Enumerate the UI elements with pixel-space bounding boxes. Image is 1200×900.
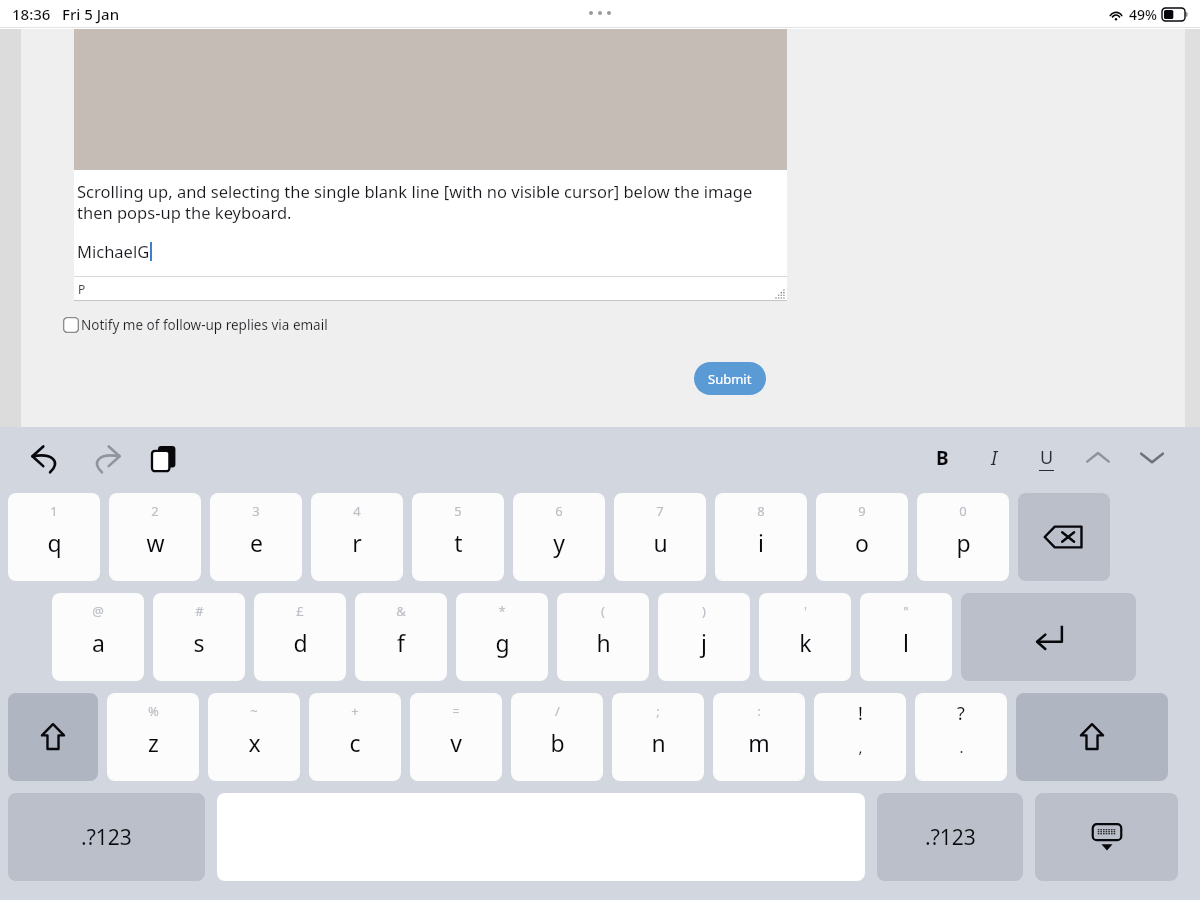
- button[interactable]: Redo: [86, 438, 126, 478]
- staticText: .?123: [925, 823, 976, 852]
- staticText: 18:36: [12, 4, 51, 24]
- button[interactable]: Hide keyboard: [1035, 793, 1178, 881]
- button[interactable]: Undo: [26, 438, 66, 478]
- button[interactable]: /: [511, 693, 603, 781]
- staticText: t: [454, 527, 463, 558]
- staticText: Submit: [708, 370, 752, 388]
- staticText: 5: [454, 502, 462, 520]
- button[interactable]: =: [410, 693, 502, 781]
- button[interactable]: 6: [513, 493, 605, 581]
- staticText: w: [146, 527, 165, 558]
- button[interactable]: I: [975, 439, 1013, 477]
- staticText: x: [248, 727, 261, 758]
- staticText: h: [596, 627, 611, 658]
- button[interactable]: !: [814, 693, 906, 781]
- staticText: £: [296, 602, 304, 620]
- staticText: n: [651, 727, 666, 758]
- staticText: p: [956, 527, 971, 558]
- staticText: .?123: [81, 823, 132, 852]
- staticText: k: [799, 627, 812, 658]
- button[interactable]: Submit: [694, 362, 766, 395]
- staticText: ': [804, 602, 807, 620]
- button[interactable]: *: [456, 593, 548, 681]
- button[interactable]: ): [658, 593, 750, 681]
- staticText: %: [148, 702, 159, 720]
- button[interactable]: £: [254, 593, 346, 681]
- staticText: @: [92, 602, 104, 620]
- staticText: *: [498, 602, 506, 620]
- button[interactable]: @: [52, 593, 144, 681]
- staticText: &: [396, 602, 406, 620]
- button[interactable]: ?: [915, 693, 1007, 781]
- staticText: P: [78, 281, 86, 297]
- button[interactable]: 2: [109, 493, 201, 581]
- staticText: Notify me of follow-up replies via email: [81, 316, 328, 334]
- button[interactable]: Backspace: [1018, 493, 1110, 581]
- staticText: b: [550, 727, 565, 758]
- staticText: Scrolling up, and selecting the single b…: [77, 180, 781, 224]
- staticText: (: [601, 602, 605, 620]
- button[interactable]: ': [759, 593, 851, 681]
- staticText: 1: [50, 502, 58, 520]
- button[interactable]: Shift: [1016, 693, 1168, 781]
- staticText: 3: [252, 502, 260, 520]
- staticText: m: [748, 727, 770, 758]
- button[interactable]: Previous field: [1077, 437, 1119, 479]
- staticText: I: [991, 445, 998, 471]
- button[interactable]: ": [860, 593, 952, 681]
- button[interactable]: B: [923, 439, 961, 477]
- button[interactable]: ~: [208, 693, 300, 781]
- staticText: :: [757, 702, 761, 720]
- staticText: !: [858, 701, 863, 726]
- button[interactable]: Shift: [8, 693, 98, 781]
- staticText: ,: [858, 737, 863, 757]
- staticText: Fri 5 Jan: [62, 4, 120, 24]
- staticText: y: [553, 527, 565, 558]
- button[interactable]: 8: [715, 493, 807, 581]
- staticText: s: [193, 627, 205, 658]
- button[interactable]: Next field: [1131, 437, 1173, 479]
- button[interactable]: 7: [614, 493, 706, 581]
- staticText: ?: [957, 701, 965, 726]
- staticText: u: [653, 527, 668, 558]
- button[interactable]: ;: [612, 693, 704, 781]
- button[interactable]: Notify me of follow-up replies via email: [63, 316, 328, 334]
- staticText: 4: [353, 502, 361, 520]
- staticText: =: [452, 702, 460, 720]
- staticText: g: [495, 627, 510, 658]
- button[interactable]: (: [557, 593, 649, 681]
- staticText: ): [702, 602, 706, 620]
- button[interactable]: .?123: [8, 793, 205, 881]
- staticText: c: [349, 727, 361, 758]
- staticText: #: [195, 602, 204, 620]
- button[interactable]: &: [355, 593, 447, 681]
- button[interactable]: 4: [311, 493, 403, 581]
- button[interactable]: U: [1027, 439, 1065, 477]
- button[interactable]: %: [107, 693, 199, 781]
- button[interactable]: Return: [961, 593, 1136, 681]
- staticText: 0: [959, 502, 967, 520]
- button[interactable]: 5: [412, 493, 504, 581]
- button[interactable]: 0: [917, 493, 1009, 581]
- button[interactable]: :: [713, 693, 805, 781]
- button[interactable]: .?123: [877, 793, 1023, 881]
- button[interactable]: 3: [210, 493, 302, 581]
- staticText: 6: [555, 502, 563, 520]
- staticText: j: [701, 627, 707, 658]
- button[interactable]: #: [153, 593, 245, 681]
- staticText: 8: [757, 502, 765, 520]
- staticText: r: [352, 527, 362, 558]
- button[interactable]: +: [309, 693, 401, 781]
- staticText: ~: [250, 702, 258, 720]
- staticText: z: [148, 727, 159, 758]
- staticText: 2: [151, 502, 159, 520]
- staticText: ": [903, 602, 909, 620]
- staticText: l: [903, 627, 909, 658]
- button[interactable]: 1: [8, 493, 100, 581]
- staticText: B: [936, 445, 949, 471]
- button[interactable]: 9: [816, 493, 908, 581]
- staticText: .: [959, 737, 964, 757]
- staticText: i: [758, 527, 764, 558]
- button[interactable]: Paste: [146, 440, 182, 476]
